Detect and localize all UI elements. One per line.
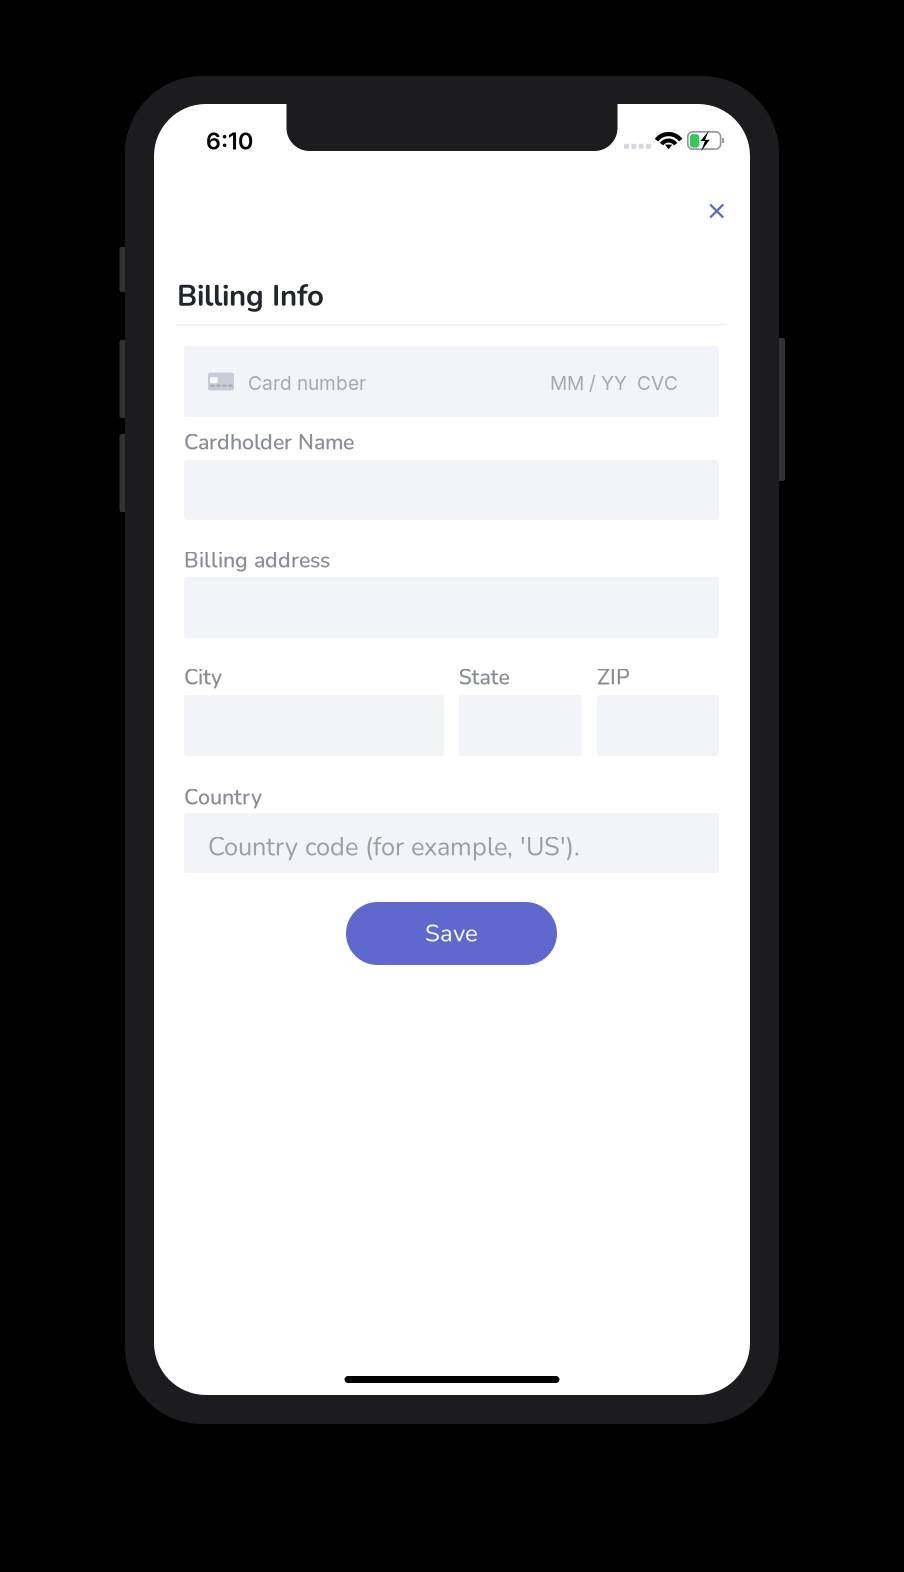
- staticText: ZIP: [597, 663, 630, 692]
- staticText: Country: [184, 783, 262, 812]
- staticText: 6:10: [206, 127, 253, 155]
- staticText: Billing Info: [177, 276, 324, 316]
- staticText: City: [184, 663, 222, 692]
- staticText: Cardholder Name: [184, 428, 354, 457]
- staticText: Country code (for example, 'US').: [208, 830, 580, 865]
- staticText: State: [459, 663, 510, 692]
- staticText: Billing address: [184, 546, 330, 575]
- button[interactable]: Save: [346, 902, 557, 965]
- staticText: MM / YY CVC: [550, 371, 678, 395]
- staticText: Save: [425, 917, 478, 950]
- staticText: Card number: [248, 371, 366, 395]
- button[interactable]: Close: [695, 189, 739, 233]
